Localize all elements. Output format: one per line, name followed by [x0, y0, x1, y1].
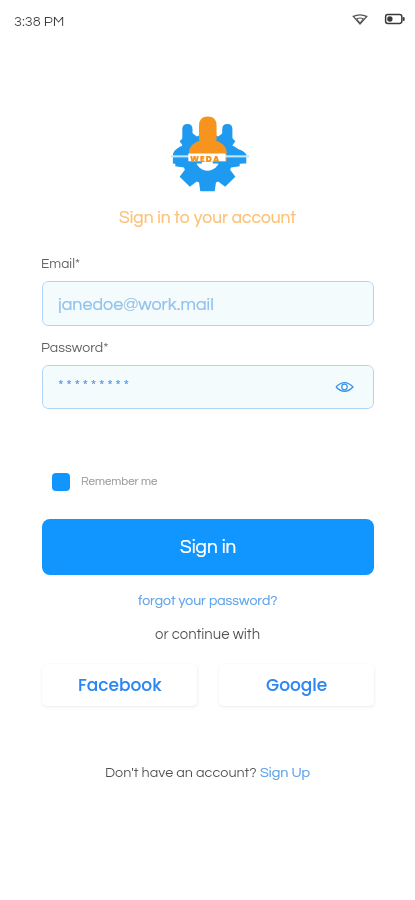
staticText: *********: [58, 378, 132, 393]
other: Wi-Fi: [353, 13, 367, 25]
button[interactable]: Show password: [336, 381, 353, 393]
staticText: Facebook: [78, 673, 162, 697]
button[interactable]: Facebook: [42, 664, 197, 706]
button[interactable]: *********: [42, 365, 374, 409]
staticText: Sign in: [180, 537, 237, 557]
staticText: Email*: [41, 257, 81, 271]
other: Battery: [385, 14, 404, 24]
button[interactable]: Sign Up: [260, 765, 311, 780]
staticText: or continue with: [155, 627, 261, 642]
staticText: janedoe@work.mail: [58, 295, 214, 313]
button[interactable]: forgot your password?: [138, 594, 278, 608]
button[interactable]: Google: [219, 664, 374, 706]
button[interactable]: janedoe@work.mail: [42, 281, 374, 326]
staticText: Sign in to your account: [119, 209, 296, 227]
staticText: WEDA: [190, 153, 221, 164]
staticText: Don't have an account?: [105, 765, 260, 780]
staticText: Google: [266, 673, 328, 697]
button[interactable]: Remember me: [52, 473, 158, 491]
staticText: Password*: [41, 340, 109, 355]
staticText: 3:38 PM: [14, 14, 65, 29]
staticText: Remember me: [81, 476, 158, 488]
button[interactable]: Sign in: [42, 519, 374, 575]
